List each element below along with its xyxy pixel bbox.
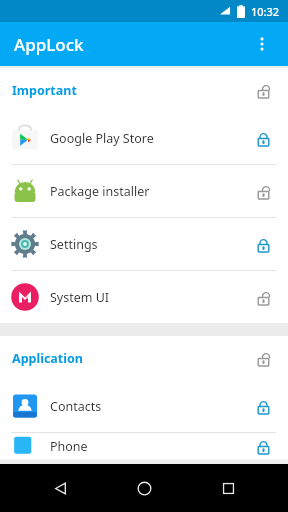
- button[interactable]: More options: [240, 22, 284, 66]
- button[interactable]: Locked: Google Play Store: [244, 119, 282, 157]
- staticText: Important: [12, 82, 77, 99]
- button[interactable]: Package installer: [0, 165, 288, 217]
- staticText: Phone: [50, 438, 88, 455]
- button[interactable]: Unlocked: Package installer: [244, 172, 282, 210]
- staticText: Google Play Store: [50, 130, 154, 147]
- button[interactable]: Locked: Contacts: [244, 387, 282, 425]
- staticText: System UI: [50, 289, 110, 306]
- button[interactable]: Locked: Phone: [244, 433, 282, 459]
- button[interactable]: Locked: Settings: [244, 225, 282, 263]
- button[interactable]: Unlocked: System UI: [244, 278, 282, 316]
- button[interactable]: Settings: [0, 218, 288, 270]
- button[interactable]: Unlocked: Important: [244, 71, 282, 109]
- staticText: 10:32: [251, 4, 280, 19]
- staticText: Package installer: [50, 183, 150, 200]
- button[interactable]: System UI: [0, 271, 288, 323]
- button[interactable]: Home: [120, 464, 168, 512]
- button[interactable]: Contacts: [0, 380, 288, 432]
- button[interactable]: Google Play Store: [0, 112, 288, 164]
- button[interactable]: Unlocked: Application: [244, 339, 282, 377]
- staticText: Contacts: [50, 398, 102, 415]
- staticText: Settings: [50, 236, 98, 253]
- button[interactable]: Recent apps: [204, 464, 252, 512]
- button[interactable]: Back: [36, 464, 84, 512]
- button[interactable]: Phone: [0, 433, 288, 459]
- staticText: Application: [12, 350, 83, 367]
- staticText: AppLock: [14, 33, 84, 56]
